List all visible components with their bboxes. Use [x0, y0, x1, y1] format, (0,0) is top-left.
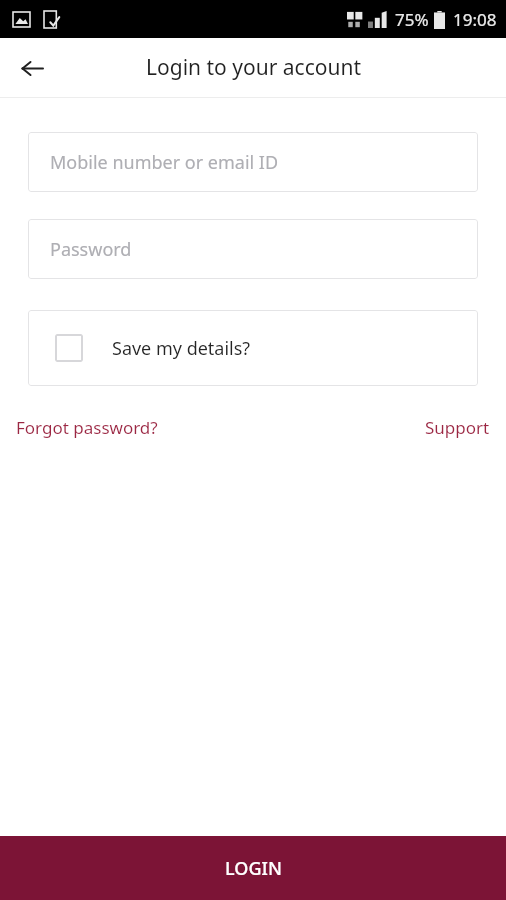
- staticText: LOGIN: [225, 856, 282, 881]
- staticText: Login to your account: [146, 53, 361, 82]
- button[interactable]: Back: [8, 44, 56, 92]
- button[interactable]: Password: [28, 219, 478, 279]
- button[interactable]: LOGIN: [0, 836, 506, 900]
- staticText: Forgot password?: [16, 416, 158, 439]
- staticText: Password: [50, 237, 132, 262]
- button[interactable]: Mobile number or email ID: [28, 132, 478, 192]
- staticText: Mobile number or email ID: [50, 150, 279, 175]
- button[interactable]: Support: [423, 412, 492, 443]
- button[interactable]: Forgot password?: [14, 412, 160, 443]
- staticText: Support: [425, 416, 490, 439]
- staticText: Save my details?: [112, 336, 251, 361]
- button[interactable]: Save my details?: [28, 310, 478, 386]
- staticText: 75%: [395, 8, 429, 31]
- staticText: 19:08: [453, 8, 497, 31]
